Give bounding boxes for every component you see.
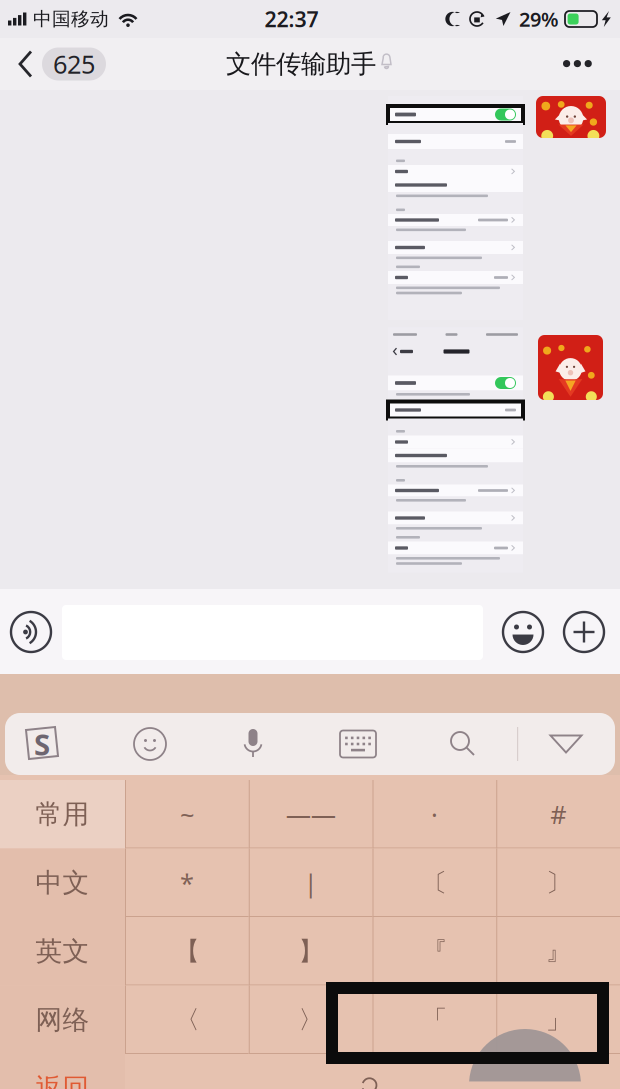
button[interactable]: —— [249,780,373,848]
staticText: 中国移动 [33,7,109,30]
staticText: 〈 [174,1004,199,1035]
staticText: 29% [519,6,559,32]
staticText: 22:37 [264,5,318,33]
button[interactable]: 网络 [0,985,125,1054]
button[interactable]: 返回 [0,1054,125,1089]
button[interactable]: 常用 [0,780,125,848]
button[interactable]: Screenshot of Settings [388,332,523,576]
button[interactable]: 〕 [496,848,620,917]
button[interactable]: 『 [372,917,496,985]
staticText: 返回 [35,1072,89,1089]
button[interactable]: Hide keyboard [521,713,611,775]
staticText: S [34,724,50,763]
staticText: ~ [180,797,194,831]
button[interactable]: Emoji [495,604,551,660]
button[interactable]: · [372,780,496,848]
staticText: # [550,797,566,831]
button[interactable]: 〉 [249,985,373,1054]
button[interactable]: More [556,604,612,660]
button[interactable]: Sogou input method [5,713,79,775]
button[interactable]: | [249,848,373,917]
staticText: 〉 [298,1004,323,1035]
button[interactable]: Emoji [115,713,185,775]
button[interactable]: ~ [125,780,249,848]
staticText: 〕 [546,867,571,898]
button[interactable]: 「 [372,985,496,1054]
staticText: 网络 [35,1003,89,1036]
staticText: 『 [422,936,447,967]
staticText: 中文 [35,866,89,899]
button[interactable]: 〈 [125,985,249,1054]
button[interactable]: Space [125,1054,620,1089]
button[interactable]: Voice message [3,604,59,660]
staticText: 英文 [35,935,89,968]
button[interactable]: 】 [249,917,373,985]
button[interactable]: # [496,780,620,848]
staticText: * [180,866,194,899]
button[interactable]: Search [428,713,498,775]
staticText: | [304,866,318,899]
staticText: 625 [53,47,95,81]
staticText: —— [286,797,336,831]
button[interactable]: More [533,38,620,90]
staticText: 文件传输助手 [226,48,376,79]
staticText: 」 [546,1004,571,1035]
staticText: 〔 [422,867,447,898]
button[interactable]: 」 [496,985,620,1054]
button[interactable]: 』 [496,917,620,985]
button[interactable]: Keyboard settings [323,713,393,775]
staticText: 』 [546,936,571,967]
staticText: 】 [298,936,323,967]
button[interactable]: 中文 [0,848,125,917]
button[interactable]: 〔 [372,848,496,917]
button[interactable]: Back, 625 unread [0,38,116,90]
staticText: 常用 [35,798,89,831]
staticText: 【 [174,936,199,967]
button[interactable]: 【 [125,917,249,985]
staticText: · [431,797,438,831]
button[interactable]: 英文 [0,917,125,985]
staticText: 「 [422,1004,447,1035]
button[interactable]: * [125,848,249,917]
button[interactable]: Voice input [218,713,288,775]
button[interactable]: Screenshot of Settings [388,96,523,320]
